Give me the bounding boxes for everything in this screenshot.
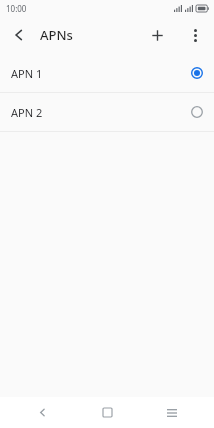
button[interactable]: Back [19,397,65,428]
button[interactable]: Add APN [138,16,176,54]
staticText: 10:00 [6,3,27,14]
button[interactable]: APN 1 [0,54,214,92]
staticText: APN 1 [11,66,43,81]
staticText: APNs [40,26,73,44]
button[interactable]: Back [0,16,38,54]
button[interactable]: Recent apps [149,397,195,428]
button[interactable]: APN 2 [0,93,214,131]
button[interactable]: More options [176,16,214,54]
button[interactable]: Home [84,397,130,428]
staticText: APN 2 [11,105,43,120]
